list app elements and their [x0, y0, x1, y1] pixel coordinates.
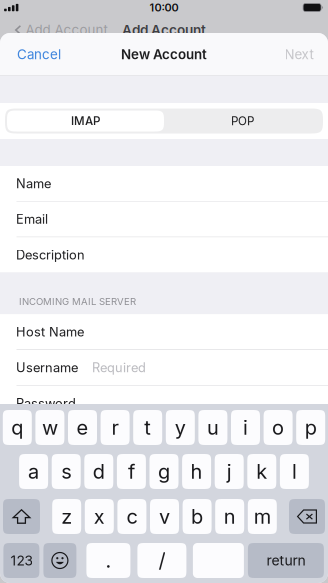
staticText: z	[61, 504, 72, 529]
staticText: w	[42, 415, 58, 440]
button[interactable]: b	[183, 499, 212, 534]
button[interactable]: x	[85, 499, 114, 534]
button[interactable]: i	[231, 410, 260, 445]
button[interactable]: o	[264, 410, 293, 445]
staticText: 10:00	[149, 1, 178, 14]
staticText: Required	[92, 360, 146, 375]
button[interactable]: v	[150, 499, 179, 534]
staticText: l	[292, 459, 297, 484]
staticText: .	[105, 548, 111, 573]
button[interactable]: Username	[0, 350, 328, 385]
staticText: Next	[284, 46, 313, 62]
button[interactable]: Email	[0, 202, 328, 237]
staticText: j	[227, 459, 232, 484]
button[interactable]: q	[3, 410, 32, 445]
staticText: Username	[16, 360, 78, 375]
staticText: POP	[231, 114, 254, 128]
staticText: r	[112, 415, 119, 440]
button[interactable]: m	[248, 499, 277, 534]
staticText: Email	[16, 211, 48, 227]
staticText: i	[243, 415, 248, 440]
button[interactable]: u	[198, 410, 227, 445]
button[interactable]: Host Name	[0, 314, 328, 349]
staticText: p	[305, 415, 317, 440]
button[interactable]: l	[280, 454, 309, 489]
button[interactable]: f	[117, 454, 146, 489]
button[interactable]: w	[35, 410, 64, 445]
button[interactable]: k	[247, 454, 276, 489]
staticText: return	[266, 552, 305, 569]
staticText: v	[159, 504, 170, 529]
button[interactable]: r	[101, 410, 130, 445]
staticText: g	[158, 459, 170, 484]
staticText: b	[191, 504, 203, 529]
staticText: u	[207, 415, 219, 440]
staticText: 123	[10, 552, 32, 569]
button[interactable]: a	[19, 454, 48, 489]
button[interactable]: y	[166, 410, 195, 445]
button[interactable]: space	[193, 543, 244, 578]
staticText: m	[254, 504, 271, 529]
button[interactable]: g	[149, 454, 178, 489]
button[interactable]: Next	[270, 33, 328, 76]
staticText: k	[256, 459, 267, 484]
staticText: IMAP	[71, 114, 100, 128]
staticText: Add Account	[25, 22, 107, 38]
button[interactable]: POP	[164, 110, 321, 131]
button[interactable]: n	[215, 499, 244, 534]
button[interactable]: s	[52, 454, 81, 489]
staticText: e	[76, 415, 88, 440]
button[interactable]: 123	[3, 543, 39, 578]
staticText: New Account	[121, 46, 207, 62]
button[interactable]: Name	[0, 166, 328, 201]
button[interactable]: j	[215, 454, 244, 489]
button[interactable]: IMAP	[7, 110, 164, 131]
staticText: Add Account	[122, 22, 206, 38]
staticText: INCOMING MAIL SERVER	[19, 296, 136, 307]
button[interactable]: d	[84, 454, 113, 489]
button[interactable]: .	[86, 543, 130, 578]
staticText: t	[144, 415, 151, 440]
staticText: x	[94, 504, 105, 529]
staticText: d	[93, 459, 105, 484]
staticText: y	[175, 415, 186, 440]
staticText: /	[158, 548, 165, 573]
button[interactable]: z	[52, 499, 81, 534]
staticText: Name	[16, 176, 51, 191]
button[interactable]: e	[68, 410, 97, 445]
button[interactable]: Password	[0, 386, 328, 421]
button[interactable]: h	[182, 454, 211, 489]
staticText: q	[11, 415, 23, 440]
button[interactable]: Cancel	[0, 33, 78, 76]
button[interactable]: t	[133, 410, 162, 445]
staticText: c	[126, 504, 137, 529]
staticText: n	[224, 504, 236, 529]
staticText: Host Name	[16, 324, 84, 340]
button[interactable]: Emoji keyboard	[43, 543, 76, 578]
button[interactable]: p	[296, 410, 325, 445]
staticText: o	[272, 415, 284, 440]
button[interactable]: /	[137, 543, 186, 578]
staticText: Cancel	[17, 46, 61, 62]
button[interactable]: Shift	[3, 499, 40, 534]
button[interactable]: c	[117, 499, 146, 534]
staticText: s	[61, 459, 71, 484]
staticText: h	[191, 459, 203, 484]
staticText: a	[28, 459, 39, 484]
button[interactable]: Delete	[289, 499, 325, 534]
button[interactable]: Description	[0, 237, 328, 272]
staticText: f	[128, 459, 135, 484]
staticText: Description	[16, 247, 85, 263]
button[interactable]: return	[248, 543, 324, 578]
staticText: Password	[16, 396, 76, 411]
